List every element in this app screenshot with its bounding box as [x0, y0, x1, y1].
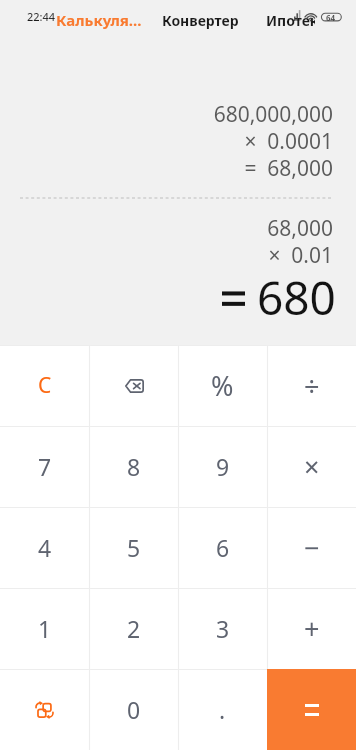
button[interactable]: Конвертер	[155, 0, 255, 36]
button[interactable]: 7	[0, 426, 89, 507]
button[interactable]: ÷	[267, 345, 356, 426]
staticText: 0	[127, 694, 141, 725]
button[interactable]: 1	[0, 588, 89, 669]
staticText: %	[211, 367, 234, 404]
button[interactable]: .	[178, 669, 267, 750]
staticText: 5	[127, 532, 141, 563]
staticText: Калькуля...	[56, 10, 142, 30]
button[interactable]: −	[267, 507, 356, 588]
button[interactable]: C	[0, 345, 89, 426]
staticText: 9	[216, 451, 230, 482]
staticText: 64	[326, 12, 336, 23]
staticText: 7	[38, 451, 52, 482]
button[interactable]: Equals	[267, 669, 356, 750]
staticText: 1	[38, 613, 52, 644]
staticText: ÷	[304, 367, 320, 404]
button[interactable]: 6	[178, 507, 267, 588]
button[interactable]: 9	[178, 426, 267, 507]
staticText: C	[38, 371, 52, 400]
staticText: 680	[257, 266, 336, 329]
staticText: 8	[127, 451, 141, 482]
staticText: .	[219, 694, 226, 725]
staticText: 3	[216, 613, 230, 644]
staticText: 6	[216, 532, 230, 563]
button[interactable]: ×	[267, 426, 356, 507]
button[interactable]: 0	[89, 669, 178, 750]
staticText: 68,000 × 0.01	[267, 214, 333, 269]
button[interactable]: 4	[0, 507, 89, 588]
staticText: 4	[38, 532, 52, 563]
staticText: 680,000,000 × 0.0001 = 68,000	[213, 100, 333, 182]
staticText: Ипотека	[266, 11, 315, 30]
button[interactable]: 8	[89, 426, 178, 507]
staticText: 2	[127, 613, 141, 644]
staticText: Конвертер	[162, 11, 239, 30]
button[interactable]: Converter	[0, 669, 89, 750]
button[interactable]: Ипотека	[259, 0, 308, 36]
button[interactable]: 2	[89, 588, 178, 669]
button[interactable]: 5	[89, 507, 178, 588]
button[interactable]: %	[178, 345, 267, 426]
staticText: ×	[304, 448, 320, 485]
button[interactable]: 3	[178, 588, 267, 669]
button[interactable]: Калькуля...	[50, 0, 150, 36]
staticText: −	[304, 529, 320, 566]
button[interactable]: Backspace	[89, 345, 178, 426]
button[interactable]: +	[267, 588, 356, 669]
staticText: +	[304, 610, 320, 647]
staticText: 22:44	[27, 9, 56, 24]
